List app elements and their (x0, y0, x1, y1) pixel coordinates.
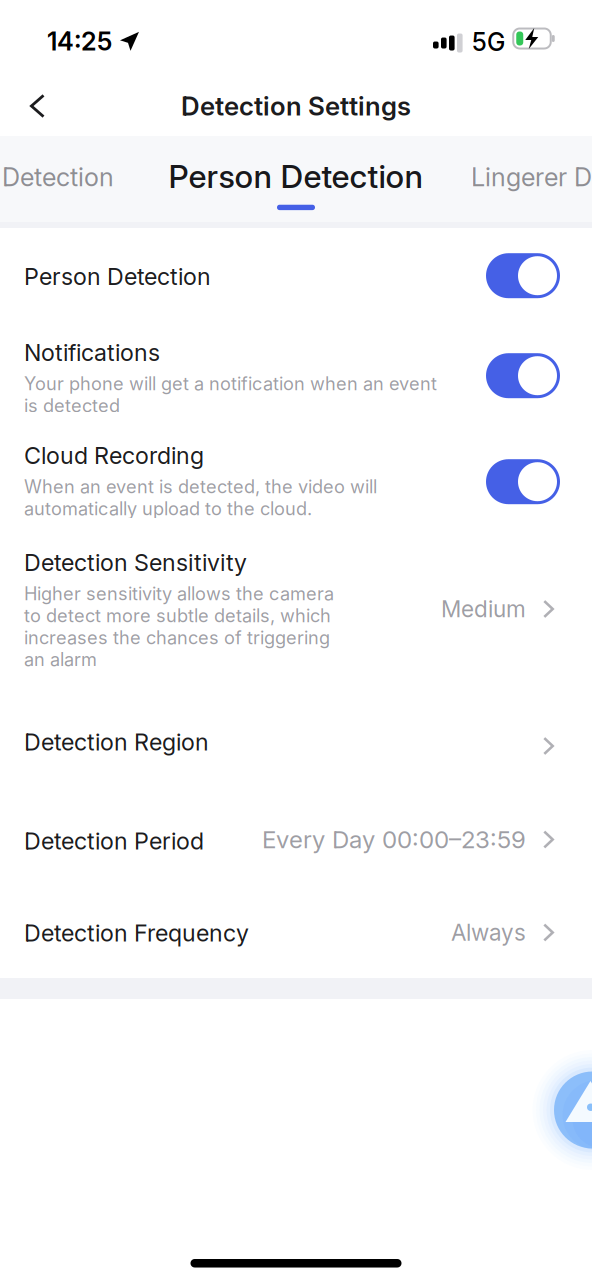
staticText: Person Detection (24, 262, 211, 291)
button[interactable]: Lingerer Detection (471, 134, 592, 220)
staticText: Always (451, 919, 526, 946)
staticText: Your phone will get a notification when … (24, 373, 437, 417)
button[interactable]: Add (532, 1050, 592, 1170)
staticText: Lingerer Detection (471, 162, 592, 192)
button[interactable]: Back (0, 76, 75, 136)
staticText: Cloud Recording (24, 441, 204, 470)
staticText: Every Day 00:00–23:59 (262, 825, 526, 854)
staticText: Detection Frequency (24, 919, 249, 947)
staticText: Medium (441, 595, 526, 623)
button[interactable]: Detection Period (0, 792, 592, 887)
staticText: Detection Region (24, 728, 209, 756)
staticText: 14:25 (47, 26, 112, 57)
button[interactable]: Cloud Recording (0, 412, 592, 518)
button[interactable]: Detection Sensitivity (0, 518, 592, 700)
button[interactable]: Notifications (0, 306, 592, 412)
staticText: Detection Sensitivity (24, 548, 247, 577)
staticText: When an event is detected, the video wil… (24, 476, 377, 520)
button[interactable]: Detection Region (0, 700, 592, 792)
staticText: Detection (2, 162, 114, 192)
staticText: 5G (472, 27, 505, 57)
staticText: Person Detection (168, 157, 423, 196)
staticText: Notifications (24, 338, 160, 367)
staticText: Detection Period (24, 827, 204, 855)
button[interactable]: Detection Frequency (0, 887, 592, 978)
staticText: Higher sensitivity allows the camera to … (24, 583, 334, 670)
staticText: Detection Settings (181, 90, 411, 122)
button[interactable]: Detection (2, 134, 132, 220)
button[interactable]: Person Detection (0, 228, 592, 306)
button[interactable]: Person Detection (167, 136, 425, 222)
